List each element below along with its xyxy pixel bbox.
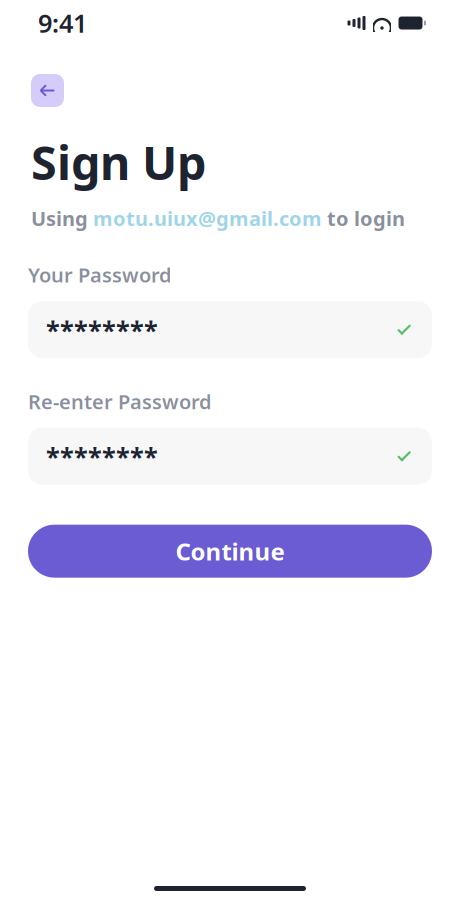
staticText: 9:41	[38, 6, 87, 40]
staticText: Using	[31, 205, 93, 232]
staticText: ********	[46, 313, 158, 346]
staticText: motu.uiux@gmail.com	[93, 205, 322, 232]
staticText: Continue	[175, 535, 284, 567]
staticText: Sign Up	[31, 131, 206, 193]
staticText: Re-enter Password	[28, 388, 212, 415]
button[interactable]: Continue	[28, 525, 432, 578]
staticText: to login	[322, 205, 405, 232]
button[interactable]: Back	[31, 74, 64, 107]
staticText: ********	[46, 439, 158, 473]
staticText: Your Password	[28, 261, 172, 288]
